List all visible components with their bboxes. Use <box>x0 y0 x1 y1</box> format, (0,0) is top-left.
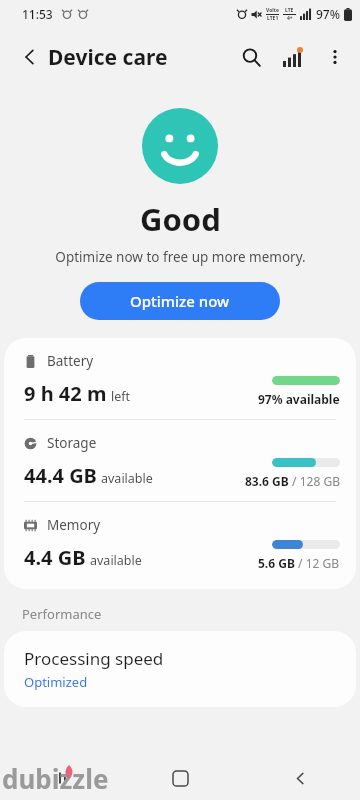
button[interactable]: Storage <box>4 420 356 501</box>
staticText: Battery <box>47 352 94 370</box>
staticText: available <box>101 470 153 487</box>
staticText: Optimize now <box>130 291 230 311</box>
staticText: available <box>90 552 142 569</box>
staticText: 5.6 GB <box>258 555 295 571</box>
staticText: Memory <box>47 516 101 534</box>
staticText: 4.4 GB <box>24 544 86 571</box>
button[interactable]: Battery <box>4 338 356 419</box>
staticText: Performance <box>22 605 102 623</box>
staticText: 11:53 <box>22 6 53 22</box>
staticText: 83.6 GB <box>245 473 289 489</box>
staticText: dubizzle <box>2 761 109 796</box>
button[interactable]: Home <box>120 756 240 800</box>
staticText: Good <box>140 198 221 240</box>
staticText: 97% <box>316 6 340 22</box>
staticText: Storage <box>47 434 97 452</box>
staticText: / 128 GB <box>289 473 340 489</box>
staticText: Volte <box>266 7 279 14</box>
staticText: Device care <box>48 43 168 72</box>
staticText: Optimize now to free up more memory. <box>55 248 306 266</box>
button[interactable]: Back <box>240 756 360 800</box>
button[interactable]: Diagnostics <box>272 36 314 78</box>
button[interactable]: Processing speed <box>4 631 356 707</box>
staticText: Processing speed <box>24 647 164 670</box>
staticText: LTE1 <box>267 15 279 22</box>
button[interactable]: Memory <box>4 502 356 583</box>
staticText: left <box>111 388 131 405</box>
button[interactable]: Back <box>10 37 50 77</box>
staticText: LTE <box>285 7 294 14</box>
button[interactable]: More options <box>314 36 356 78</box>
staticText: 44.4 GB <box>24 462 97 489</box>
staticText: / 12 GB <box>295 555 340 571</box>
staticText: 97% available <box>258 391 340 407</box>
button[interactable]: Optimize now <box>80 282 280 320</box>
staticText: 4+ <box>287 15 293 22</box>
staticText: Optimized <box>24 673 88 691</box>
button[interactable]: Recents <box>0 756 120 800</box>
staticText: 9 h 42 m <box>24 380 107 407</box>
button[interactable]: Search <box>230 36 272 78</box>
